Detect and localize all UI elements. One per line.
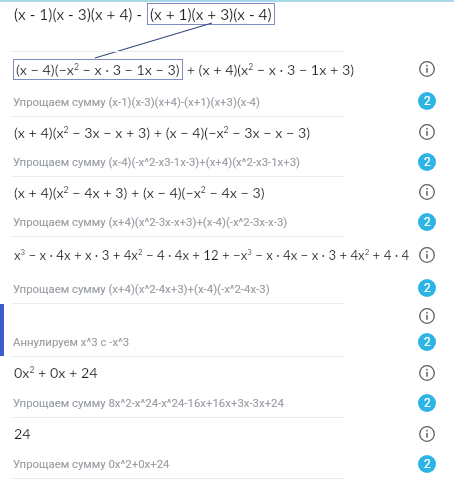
staticText: Упрощаем сумму (x-1)(x-3)(x+4)-(x+1)(x+3… bbox=[13, 95, 260, 108]
button[interactable]: Show 2 sub-steps bbox=[412, 273, 442, 303]
staticText: Упрощаем сумму (x+4)(x^2-4x+3)+(x-4)(-x^… bbox=[13, 282, 270, 295]
button[interactable]: Info bbox=[412, 177, 442, 207]
staticText: 2 bbox=[424, 215, 431, 229]
staticText: Упрощаем сумму 0x^2+0x+24 bbox=[13, 457, 170, 470]
staticText: 2 bbox=[424, 281, 431, 295]
button[interactable]: Info bbox=[412, 240, 442, 270]
staticText: (x + 4)(x2 − 4x + 3) + (x − 4)(−x2 − 4x … bbox=[14, 184, 265, 201]
button[interactable]: Show 2 sub-steps bbox=[412, 327, 442, 356]
staticText: 24 bbox=[14, 425, 31, 442]
button[interactable]: Info bbox=[412, 117, 442, 147]
staticText: Упрощаем сумму (x+4)(x^2-3x-x+3)+(x-4)(-… bbox=[13, 215, 288, 228]
staticText: (x + 1)(x + 3)(x - 4) bbox=[150, 5, 272, 23]
staticText: Упрощаем сумму (x-4)(-x^2-x3-1x-3)+(x+4)… bbox=[13, 155, 301, 168]
button[interactable]: Info bbox=[412, 358, 442, 388]
staticText: 0x2 + 0x + 24 bbox=[14, 364, 98, 381]
staticText: (x − 4)(−x2 − x · 3 − 1x − 3) bbox=[16, 61, 180, 78]
button[interactable]: Show 2 sub-steps bbox=[412, 86, 442, 116]
staticText: (x - 1)(x - 3)(x + 4) - bbox=[14, 5, 147, 23]
staticText: Аннулируем x^3 с -x^3 bbox=[13, 335, 130, 348]
button[interactable]: Show 2 sub-steps bbox=[412, 388, 442, 417]
staticText: 2 bbox=[424, 155, 431, 169]
button[interactable]: Show 2 sub-steps bbox=[412, 147, 442, 176]
button[interactable]: Show 2 sub-steps bbox=[412, 207, 442, 236]
staticText: 2 bbox=[424, 335, 431, 349]
staticText: + (x + 4)(x2 − x · 3 − 1x + 3) bbox=[183, 61, 354, 78]
staticText: Упрощаем сумму 8x^2-x^24-x^24-16x+16x+3x… bbox=[13, 396, 284, 409]
staticText: (x + 4)(x2 − 3x − x + 3) + (x − 4)(−x2 −… bbox=[14, 124, 311, 141]
button[interactable]: Info bbox=[412, 54, 442, 84]
button[interactable]: Show 2 sub-steps bbox=[412, 449, 442, 478]
staticText: 2 bbox=[424, 94, 431, 108]
staticText: x3 − x · 4x + x · 3 + 4x2 − 4 · 4x + 12 … bbox=[14, 247, 410, 263]
button[interactable]: Info bbox=[412, 419, 442, 449]
staticText: 2 bbox=[424, 457, 431, 471]
button[interactable]: Info bbox=[412, 304, 442, 327]
staticText: 2 bbox=[424, 396, 431, 410]
